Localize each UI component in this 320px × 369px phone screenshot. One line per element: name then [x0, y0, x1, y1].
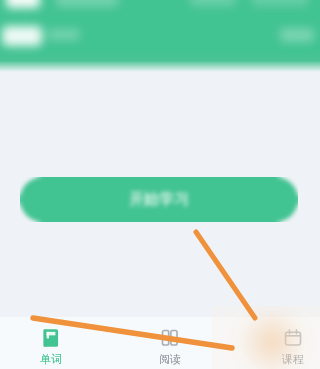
button[interactable]: 单词 — [25, 317, 77, 369]
button[interactable]: 开始学习 — [20, 177, 298, 222]
button[interactable]: 课程 — [267, 317, 319, 369]
staticText: 阅读 — [159, 352, 181, 366]
staticText: 课程 — [282, 352, 304, 366]
staticText: 单词 — [40, 352, 62, 366]
staticText: 开始学习 — [129, 190, 189, 209]
button[interactable]: 阅读 — [144, 317, 196, 369]
